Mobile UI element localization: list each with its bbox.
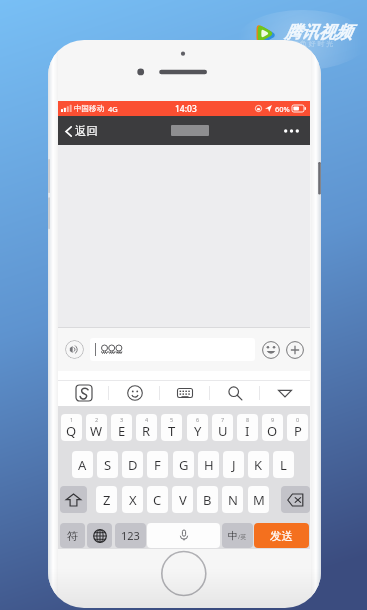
staticText: D [128,456,138,474]
button[interactable]: 返回 [62,120,101,142]
staticText: 6 [196,416,200,423]
button[interactable]: 发送 [254,523,309,548]
button[interactable]: A [72,451,93,478]
staticText: U [218,422,228,440]
staticText: X [129,491,137,509]
staticText: 1 [70,416,74,423]
button[interactable]: H [198,451,219,478]
staticText: 7 [221,416,225,423]
staticText: K [254,456,263,474]
button[interactable]: smile [115,380,155,406]
button[interactable]: Z [96,486,117,513]
button[interactable]: Add more [286,341,304,359]
button[interactable]: 3 [111,414,132,441]
button[interactable]: kb [165,380,205,406]
staticText: 4G [108,104,118,114]
button[interactable]: 8 [237,414,258,441]
staticText: 4 [145,416,149,423]
button[interactable]: C [147,486,168,513]
button[interactable]: down [265,380,305,406]
staticText: E [118,422,126,440]
button[interactable]: search [215,380,255,406]
staticText: 9 [271,416,275,423]
staticText: 5 [170,416,174,423]
staticText: R [142,422,151,440]
staticText: G [179,456,189,474]
button[interactable]: 中英 [222,523,253,548]
staticText: P [294,422,302,440]
button[interactable]: S [97,451,118,478]
button[interactable]: 2 [86,414,107,441]
staticText: W [90,422,103,440]
staticText: Q [66,422,77,440]
staticText: 腾讯视频 [284,22,352,43]
staticText: 中国移动 [74,104,104,113]
staticText: 发送 [270,529,293,543]
staticText: 3 [120,416,124,423]
staticText: 123 [121,528,140,543]
button[interactable]: Shift [60,486,87,513]
staticText: Y [194,422,202,440]
button[interactable]: globe [87,523,112,548]
staticText: 返回 [75,124,98,138]
button[interactable]: More options [280,125,303,137]
staticText: 60% [275,104,290,114]
button[interactable]: 9 [262,414,283,441]
button[interactable]: L [273,451,294,478]
staticText: A [78,456,87,474]
button[interactable] [90,338,255,361]
button[interactable]: B [197,486,218,513]
staticText: O [267,422,278,440]
button[interactable]: M [248,486,269,513]
button[interactable]: 5 [161,414,182,441]
staticText: Z [103,491,111,509]
staticText: I [245,422,250,440]
staticText: 14:03 [175,103,197,115]
button[interactable]: J [223,451,244,478]
staticText: L [280,456,287,474]
staticText: 0 [296,416,300,423]
button[interactable]: 6 [187,414,208,441]
staticText: C [153,491,162,509]
button[interactable]: F [147,451,168,478]
staticText: J [232,456,236,474]
staticText: 不 负 好 时 光 [291,39,334,49]
button[interactable]: S [64,380,104,406]
button[interactable]: 4 [136,414,157,441]
staticText: F [154,456,161,474]
button[interactable]: Delete [281,486,310,513]
button[interactable]: 1 [61,414,82,441]
staticText: N [228,491,238,509]
button[interactable]: N [222,486,243,513]
staticText: B [203,491,212,509]
button[interactable]: Voice input [65,340,84,359]
button[interactable]: 0 [287,414,308,441]
button[interactable]: V [172,486,193,513]
button[interactable]: G [173,451,194,478]
staticText: 中 [228,529,238,542]
staticText: M [253,491,265,509]
button[interactable]: X [122,486,143,513]
button[interactable]: Emoji [262,341,280,359]
button[interactable]: space [147,523,220,548]
button[interactable]: K [248,451,269,478]
button[interactable]: 符 [60,523,85,548]
staticText: T [168,422,176,440]
staticText: V [179,491,187,509]
staticText: S [104,456,112,474]
button[interactable]: D [122,451,143,478]
button[interactable]: 123 [115,523,146,548]
staticText: 8 [246,416,250,423]
staticText: 符 [67,529,78,543]
staticText: 2 [95,416,99,423]
staticText: /英 [238,533,247,541]
button[interactable]: 7 [212,414,233,441]
staticText: H [204,456,214,474]
